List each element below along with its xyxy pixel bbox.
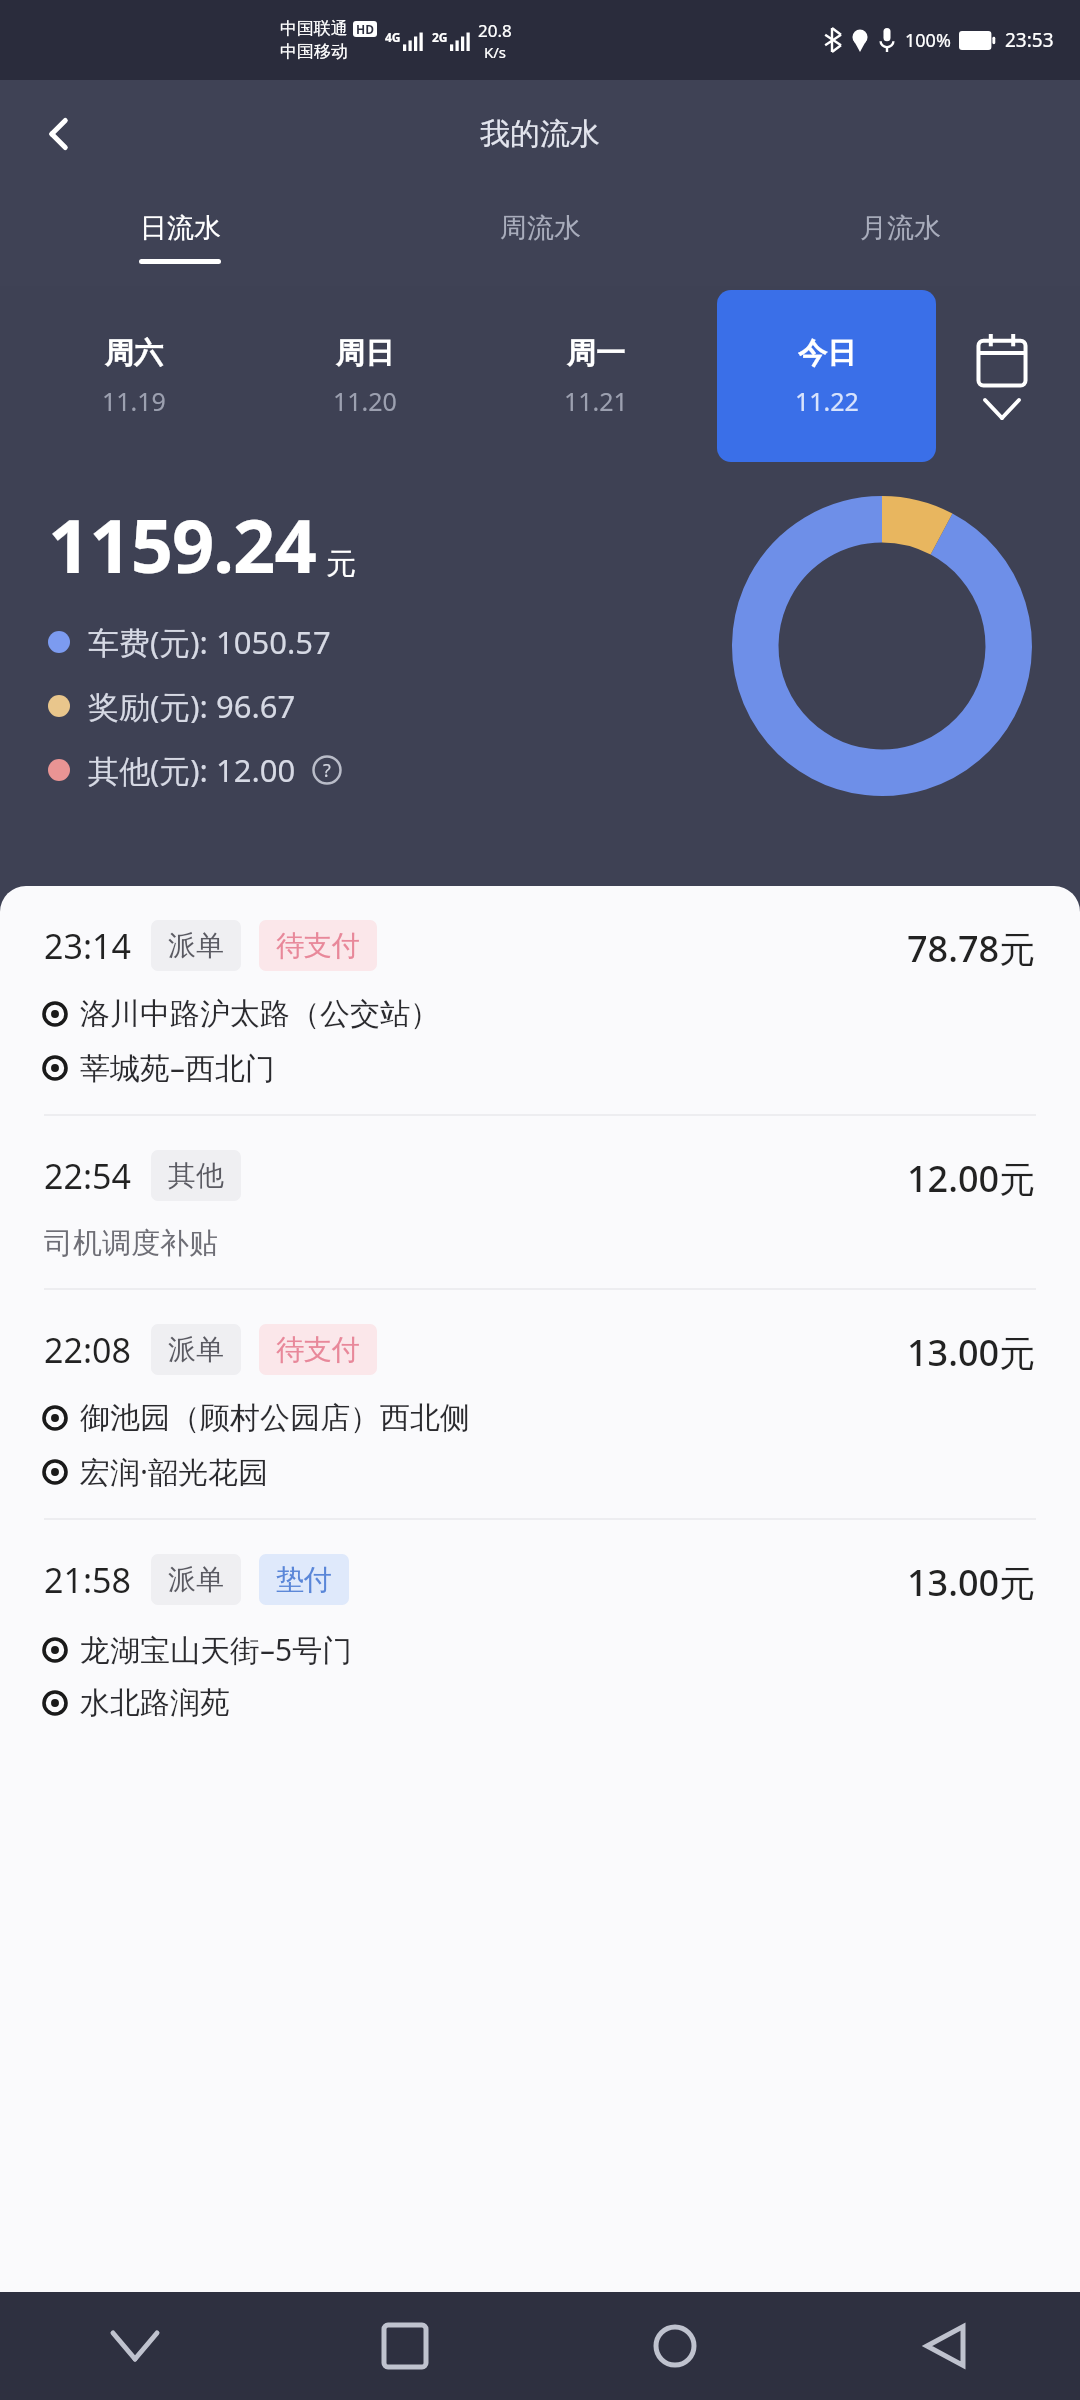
staticText: 周流水 [500, 211, 581, 245]
staticText: 宏润·韶光花园 [80, 1451, 269, 1492]
button[interactable]: Back [810, 2292, 1080, 2400]
staticText: 垫付 [276, 1562, 332, 1597]
staticText: 4G [385, 29, 401, 45]
staticText: 我的流水 [480, 115, 600, 153]
staticText: HD [356, 21, 374, 37]
button[interactable]: 待支付 [259, 920, 377, 971]
staticText: 100% [905, 28, 951, 53]
staticText: 78.78元 [907, 924, 1036, 973]
staticText: 周日 [336, 335, 394, 372]
staticText: 洛川中路沪太路（公交站） [80, 995, 440, 1033]
staticText: 22:54 [44, 1153, 131, 1199]
button[interactable]: 22:54 [0, 1116, 1080, 1288]
staticText: 派单 [168, 928, 224, 963]
staticText: 11.22 [795, 384, 859, 418]
button[interactable]: Hide keyboard [0, 2292, 270, 2400]
button[interactable]: Home [540, 2292, 810, 2400]
staticText: 其他 [168, 1158, 224, 1193]
staticText: 21:58 [44, 1557, 131, 1603]
staticText: 20.8 [478, 19, 512, 42]
staticText: 中国移动 [280, 41, 348, 62]
staticText: 1159.24 [48, 494, 316, 595]
staticText: 周一 [567, 335, 625, 372]
staticText: 派单 [168, 1562, 224, 1597]
button[interactable]: 今日 [717, 290, 936, 462]
button[interactable]: 垫付 [259, 1554, 349, 1605]
button[interactable]: 月流水 [720, 188, 1080, 286]
staticText: ? [323, 758, 331, 783]
button[interactable]: 派单 [151, 920, 241, 971]
staticText: 月流水 [860, 211, 941, 245]
staticText: 13.00元 [907, 1558, 1036, 1607]
staticText: 今日 [798, 335, 856, 372]
button[interactable]: 23:14 [0, 886, 1080, 1114]
staticText: 待支付 [276, 1332, 360, 1367]
button[interactable]: 其他 [151, 1150, 241, 1201]
staticText: 待支付 [276, 928, 360, 963]
button[interactable]: Help [310, 753, 344, 787]
staticText: 水北路润苑 [80, 1684, 230, 1722]
staticText: 派单 [168, 1332, 224, 1367]
button[interactable]: 派单 [151, 1324, 241, 1375]
button[interactable]: 21:58 [0, 1520, 1080, 1748]
staticText: 23:14 [44, 923, 131, 969]
button[interactable]: Back [24, 100, 92, 168]
staticText: 11.21 [564, 384, 628, 418]
staticText: 23:53 [1005, 27, 1054, 53]
staticText: 周六 [105, 335, 163, 372]
staticText: 司机调度补贴 [44, 1225, 218, 1262]
button[interactable]: 周一 [486, 290, 705, 462]
staticText: 中国联通 [280, 18, 348, 39]
staticText: 11.20 [333, 384, 397, 418]
staticText: 13.00元 [907, 1328, 1036, 1377]
button[interactable]: 22:08 [0, 1290, 1080, 1518]
staticText: 奖励(元): 96.67 [88, 685, 296, 727]
staticText: 12.00元 [907, 1154, 1036, 1203]
staticText: 11.19 [102, 384, 166, 418]
staticText: 2G [432, 29, 448, 45]
button[interactable]: Calendar [942, 286, 1062, 466]
button[interactable]: 待支付 [259, 1324, 377, 1375]
staticText: 22:08 [44, 1327, 131, 1373]
button[interactable]: 周日 [255, 290, 474, 462]
button[interactable]: 周六 [24, 290, 243, 462]
staticText: K/s [484, 42, 507, 62]
button[interactable]: Recents [270, 2292, 540, 2400]
staticText: 车费(元): 1050.57 [88, 621, 331, 663]
staticText: 龙湖宝山天街–5号门 [80, 1629, 353, 1670]
button[interactable]: 日流水 [0, 188, 360, 286]
staticText: 御池园（顾村公园店）西北侧 [80, 1399, 470, 1437]
staticText: 莘城苑–西北门 [80, 1047, 275, 1088]
staticText: 元 [326, 545, 356, 583]
button[interactable]: 派单 [151, 1554, 241, 1605]
staticText: 日流水 [140, 211, 221, 245]
button[interactable]: 周流水 [360, 188, 720, 286]
staticText: 其他(元): 12.00 [88, 749, 296, 791]
